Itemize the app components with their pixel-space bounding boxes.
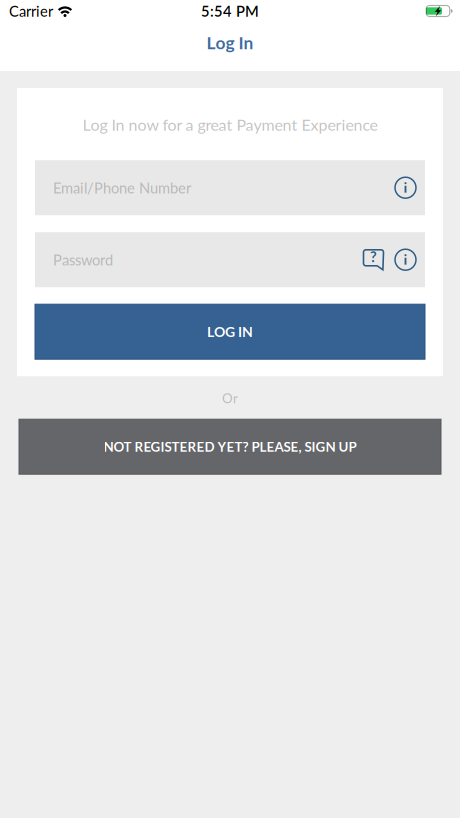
button[interactable]: Password help — [363, 249, 384, 270]
button[interactable]: LOG IN — [35, 304, 425, 359]
staticText: Email/Phone Number — [53, 179, 191, 196]
staticText: Log In now for a great Payment Experienc… — [82, 115, 377, 134]
staticText: Log In — [206, 32, 253, 53]
staticText: Carrier — [9, 2, 53, 20]
staticText: 5:54 PM — [201, 2, 259, 20]
button[interactable]: Password information — [395, 249, 416, 270]
staticText: LOG IN — [207, 323, 253, 340]
staticText: Password — [53, 251, 113, 268]
staticText: Or — [222, 390, 238, 406]
button[interactable]: NOT REGISTERED YET? PLEASE, SIGN UP — [19, 419, 441, 474]
button[interactable]: Email or phone number information — [395, 177, 416, 198]
staticText: NOT REGISTERED YET? PLEASE, SIGN UP — [103, 439, 356, 455]
staticText: ? — [370, 248, 377, 265]
